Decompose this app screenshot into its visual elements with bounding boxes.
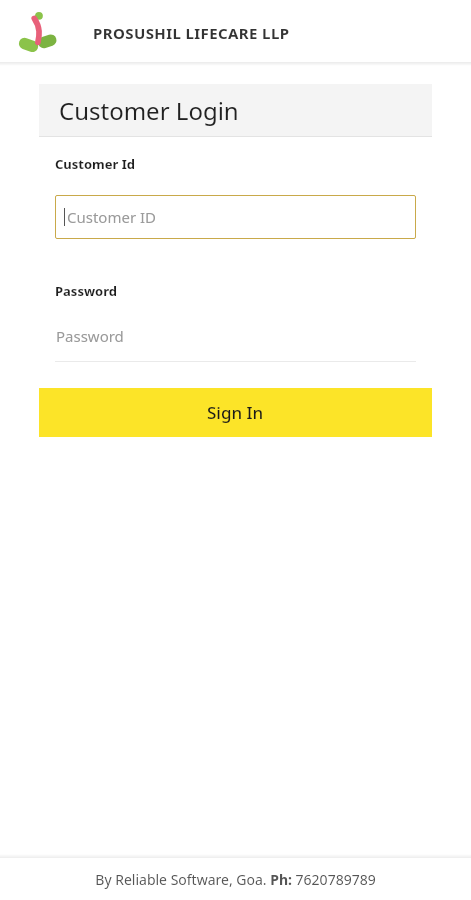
- button[interactable]: Sign In: [39, 388, 432, 437]
- other: Prosushil Lifecare logo: [14, 7, 66, 59]
- staticText: Password: [55, 282, 117, 300]
- button[interactable]: Password: [55, 326, 416, 362]
- staticText: Customer Id: [55, 155, 135, 173]
- staticText: Password: [56, 326, 124, 346]
- staticText: Customer ID: [67, 207, 157, 227]
- staticText: Customer Login: [59, 94, 239, 127]
- staticText: By Reliable Software, Goa. Ph: 762078978…: [95, 870, 376, 889]
- staticText: Sign In: [207, 401, 264, 424]
- button[interactable]: Customer ID: [55, 195, 416, 239]
- staticText: PROSUSHIL LIFECARE LLP: [93, 23, 290, 43]
